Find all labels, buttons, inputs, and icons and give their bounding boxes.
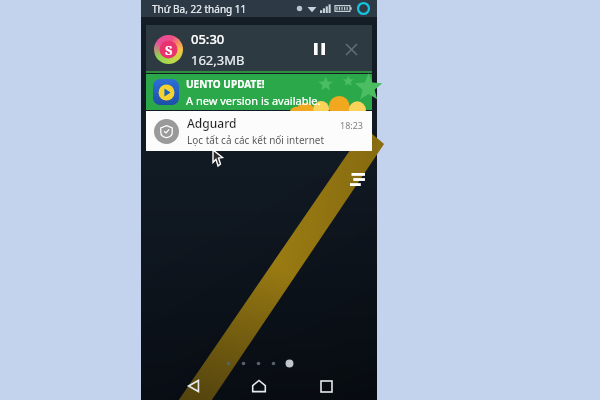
staticText: 162,3MB — [191, 51, 245, 69]
button[interactable]: Clear all notifications — [345, 167, 369, 191]
staticText: Adguard — [187, 115, 237, 131]
staticText: Lọc tất cả các kết nối internet — [187, 133, 325, 147]
staticText: 05:30 — [191, 30, 225, 48]
staticText: UENTO UPDATE! — [186, 77, 265, 91]
button[interactable]: S — [146, 25, 372, 73]
button[interactable]: Adguard — [146, 111, 372, 151]
staticText: S — [165, 41, 173, 59]
button[interactable]: Home — [244, 372, 274, 400]
staticText: A new version is available. — [186, 93, 321, 108]
staticText: Thứ Ba, 22 tháng 11 — [152, 2, 247, 16]
button[interactable]: Pause — [308, 38, 330, 60]
button[interactable]: UENTO UPDATE! — [146, 74, 372, 110]
button[interactable]: Back — [178, 372, 208, 400]
button[interactable]: Dismiss — [340, 38, 362, 60]
button[interactable]: Recent apps — [311, 372, 341, 400]
staticText: 18:23 — [340, 119, 364, 131]
